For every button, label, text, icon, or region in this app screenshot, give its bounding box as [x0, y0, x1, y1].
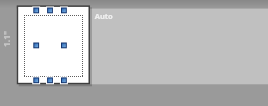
button[interactable]: Layout design surface [0, 0, 268, 106]
